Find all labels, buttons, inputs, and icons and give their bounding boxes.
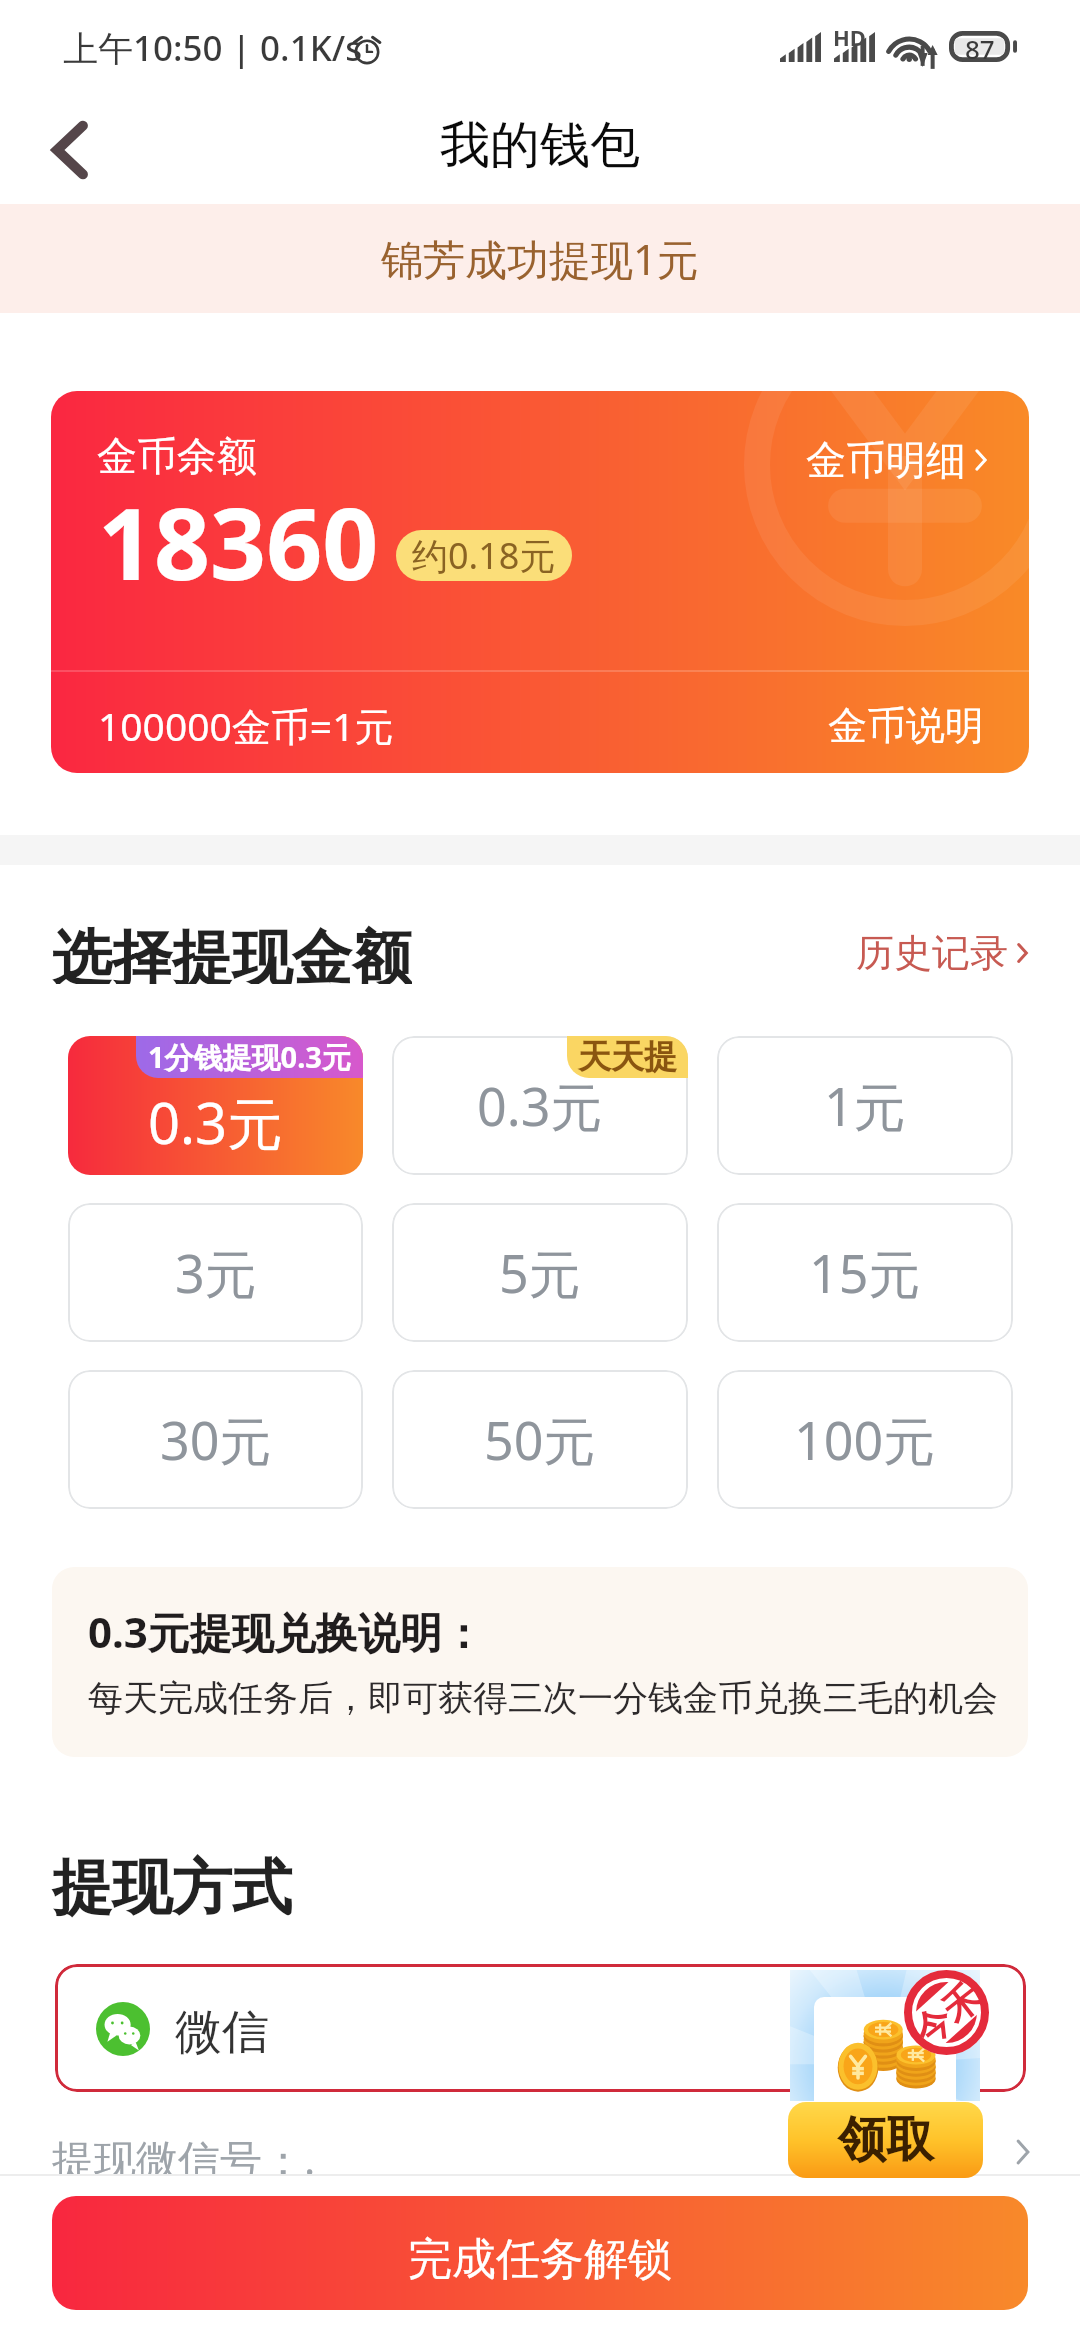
staticText: 约0.18元	[412, 531, 556, 580]
staticText: HD	[833, 22, 866, 52]
button[interactable]: 金币余额	[51, 391, 1029, 773]
staticText: 0.3元	[477, 1070, 603, 1141]
staticText: 提现微信号：.	[52, 2130, 316, 2174]
staticText: 50元	[484, 1404, 596, 1475]
staticText: 锦芳成功提现1元	[381, 230, 700, 287]
button[interactable]: 0.3元	[392, 1036, 688, 1175]
staticText: 每天完成任务后，即可获得三次一分钱金币兑换三毛的机会	[88, 1676, 998, 1720]
staticText: 我的钱包	[440, 114, 640, 177]
button[interactable]: 30元	[68, 1370, 363, 1509]
staticText: 选择提现金额	[52, 921, 412, 984]
staticText: 金币明细	[806, 435, 966, 485]
staticText: 0.3元提现兑换说明：	[88, 1603, 484, 1660]
staticText: 上午10:50 | 0.1K/s	[63, 24, 363, 72]
staticText: 历史记录	[856, 929, 1008, 977]
button[interactable]: 完成任务解锁	[52, 2196, 1028, 2310]
staticText: 1元	[824, 1070, 906, 1141]
staticText: 87	[965, 31, 995, 62]
button[interactable]: 历史记录	[856, 929, 1028, 977]
staticText: 3元	[175, 1237, 257, 1308]
staticText: 0.3元	[148, 1084, 284, 1160]
button[interactable]: 0.3元	[68, 1036, 363, 1175]
staticText: 今禾	[905, 1975, 989, 2054]
button[interactable]: 5元	[392, 1203, 688, 1342]
staticText: 领取	[838, 2110, 934, 2170]
button[interactable]: 100元	[717, 1370, 1013, 1509]
staticText: 完成任务解锁	[408, 2232, 672, 2287]
staticText: 提现方式	[52, 1850, 292, 1926]
staticText: 100000金币=1元	[98, 699, 394, 752]
button[interactable]: 提现微信号：.	[0, 2130, 1080, 2174]
button[interactable]: 50元	[392, 1370, 688, 1509]
staticText: 1分钱提现0.3元	[148, 1037, 351, 1077]
staticText: 30元	[160, 1404, 272, 1475]
staticText: 天天提	[578, 1036, 677, 1078]
staticText: 15元	[809, 1237, 921, 1308]
button[interactable]: 金币明细	[806, 435, 987, 485]
staticText: 100元	[794, 1404, 936, 1475]
button[interactable]: 领取	[788, 2102, 983, 2178]
staticText: 5元	[499, 1237, 581, 1308]
staticText: 18360	[98, 475, 379, 608]
button[interactable]: 3元	[68, 1203, 363, 1342]
button[interactable]: 锦芳成功提现1元	[0, 204, 1080, 313]
button[interactable]: 1元	[717, 1036, 1013, 1175]
staticText: 金币余额	[97, 431, 257, 481]
button[interactable]: Back	[30, 110, 110, 190]
other: 今天	[904, 1970, 989, 2055]
staticText: 微信	[175, 2003, 269, 2062]
button[interactable]: 金币说明	[828, 701, 984, 750]
button[interactable]: 微信	[55, 1964, 1026, 2092]
button[interactable]: 15元	[717, 1203, 1013, 1342]
